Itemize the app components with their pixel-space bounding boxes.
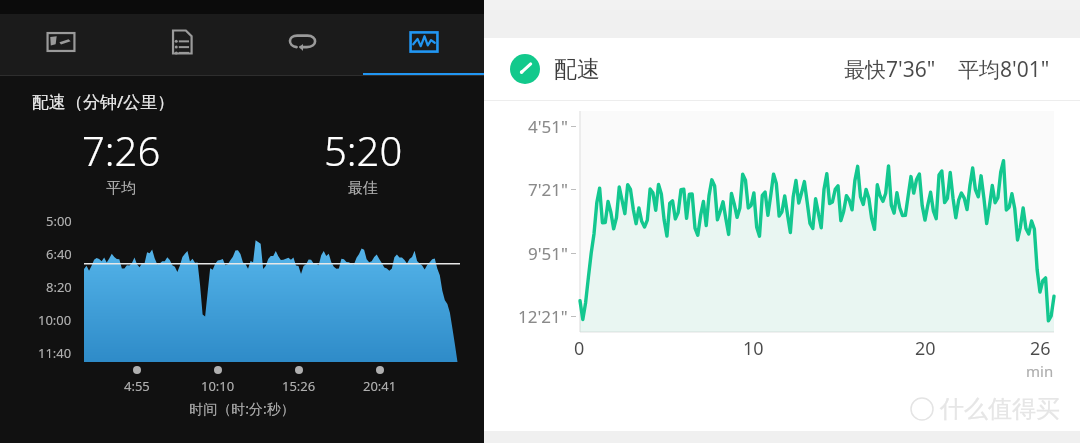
staticText: 0 bbox=[574, 336, 585, 361]
staticText: 4'51" bbox=[528, 115, 568, 138]
staticText: 6:40 bbox=[46, 245, 72, 263]
staticText: 10:00 bbox=[38, 311, 72, 329]
staticText: 最佳 bbox=[348, 179, 378, 198]
staticText: 配速 bbox=[554, 55, 600, 84]
staticText: 5:00 bbox=[46, 212, 72, 230]
staticText: 7:26 bbox=[82, 123, 161, 177]
staticText: 10:10 bbox=[201, 377, 235, 395]
staticText: 20:41 bbox=[363, 377, 397, 395]
staticText: 配速（分钟/公里） bbox=[32, 90, 175, 113]
staticText: 20 bbox=[915, 336, 936, 361]
staticText: 11:40 bbox=[38, 344, 72, 362]
button[interactable]: 配速 bbox=[484, 38, 1080, 100]
staticText: min bbox=[1026, 361, 1054, 381]
staticText: 平均8'01" bbox=[958, 55, 1050, 84]
staticText: 什么值得买 bbox=[940, 394, 1060, 424]
staticText: 26 bbox=[1030, 336, 1051, 361]
staticText: 5:20 bbox=[324, 123, 403, 177]
staticText: 9'51" bbox=[528, 242, 568, 265]
staticText: 15:26 bbox=[282, 377, 316, 395]
staticText: 最快7'36" bbox=[844, 55, 936, 84]
staticText: 4:55 bbox=[124, 377, 150, 395]
button[interactable]: Charts bbox=[363, 14, 484, 76]
staticText: 8:20 bbox=[46, 278, 72, 296]
button[interactable]: Map bbox=[0, 14, 121, 76]
button[interactable]: Laps bbox=[242, 14, 363, 76]
staticText: 10 bbox=[743, 336, 764, 361]
staticText: 12'21" bbox=[518, 305, 568, 328]
button[interactable]: Details bbox=[121, 14, 242, 76]
staticText: 7'21" bbox=[528, 178, 568, 201]
staticText: 时间（时:分:秒） bbox=[0, 399, 484, 418]
staticText: 平均 bbox=[106, 179, 136, 198]
